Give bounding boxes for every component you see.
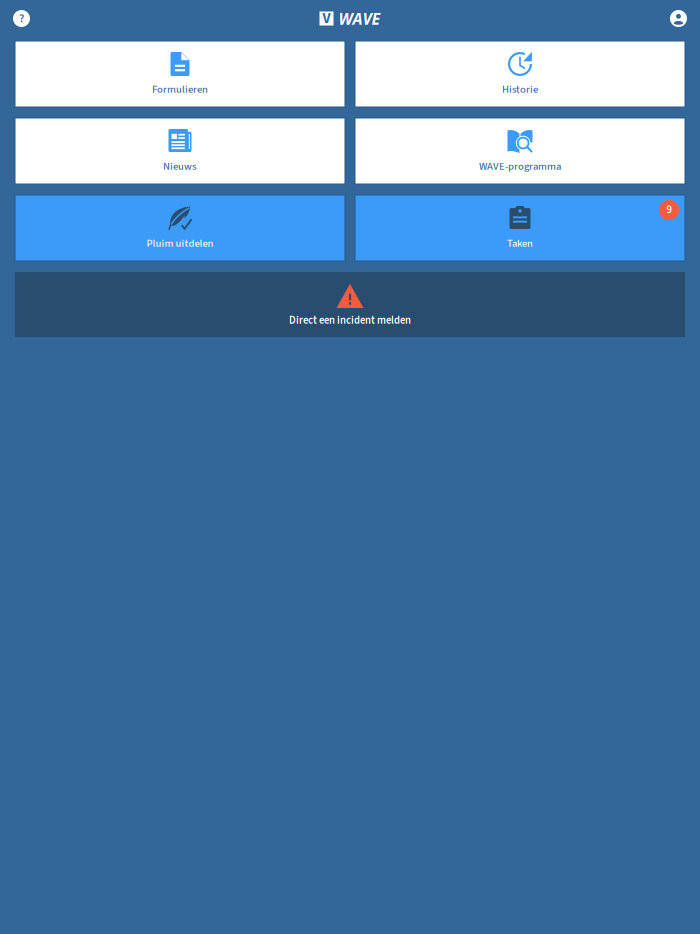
staticText: ? bbox=[19, 10, 24, 27]
staticText: V bbox=[322, 8, 330, 29]
button[interactable]: Direct een incident melden bbox=[15, 272, 685, 337]
button[interactable]: Account bbox=[670, 10, 687, 27]
button[interactable]: Taken bbox=[355, 195, 685, 261]
button[interactable]: WAVE-programma bbox=[355, 118, 685, 184]
button[interactable]: Historie bbox=[355, 41, 685, 107]
staticText: Formulieren bbox=[152, 82, 208, 97]
button[interactable]: Formulieren bbox=[15, 41, 345, 107]
staticText: Pluim uitdelen bbox=[146, 236, 213, 251]
staticText: 9 bbox=[666, 202, 671, 218]
staticText: Direct een incident melden bbox=[289, 313, 411, 328]
button[interactable]: Help bbox=[13, 10, 30, 27]
staticText: Taken bbox=[507, 236, 533, 251]
staticText: WAVE bbox=[338, 8, 380, 29]
staticText: Nieuws bbox=[163, 159, 197, 174]
button[interactable]: Nieuws bbox=[15, 118, 345, 184]
button[interactable]: Pluim uitdelen bbox=[15, 195, 345, 261]
staticText: Historie bbox=[502, 82, 538, 97]
staticText: WAVE-programma bbox=[479, 159, 561, 174]
